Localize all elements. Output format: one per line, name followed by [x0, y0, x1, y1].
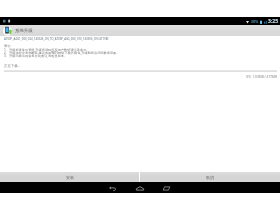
staticText: A700P_A4G1_000_024_140326_CN_TD_A700P_A4… — [4, 37, 109, 41]
staticText: 系统升级 — [15, 28, 33, 34]
button[interactable]: 安装 — [0, 172, 139, 182]
staticText: 30% — [251, 19, 259, 24]
staticText: 警告: 1、升级前请备份资料,升级将清除所有用户数据请注意备份。 2、升级过程中… — [4, 44, 120, 58]
button[interactable]: Recent apps — [161, 183, 172, 194]
button[interactable]: Home — [134, 183, 145, 194]
staticText: 取消 — [206, 175, 214, 180]
staticText: 3:25 — [268, 18, 278, 25]
staticText: 安装 — [66, 175, 74, 180]
button[interactable]: Back — [107, 183, 118, 194]
staticText: 正在下载... — [4, 63, 21, 68]
button[interactable]: 取消 — [140, 172, 280, 182]
staticText: 0% 1.03MB / 477MB — [4, 75, 277, 79]
